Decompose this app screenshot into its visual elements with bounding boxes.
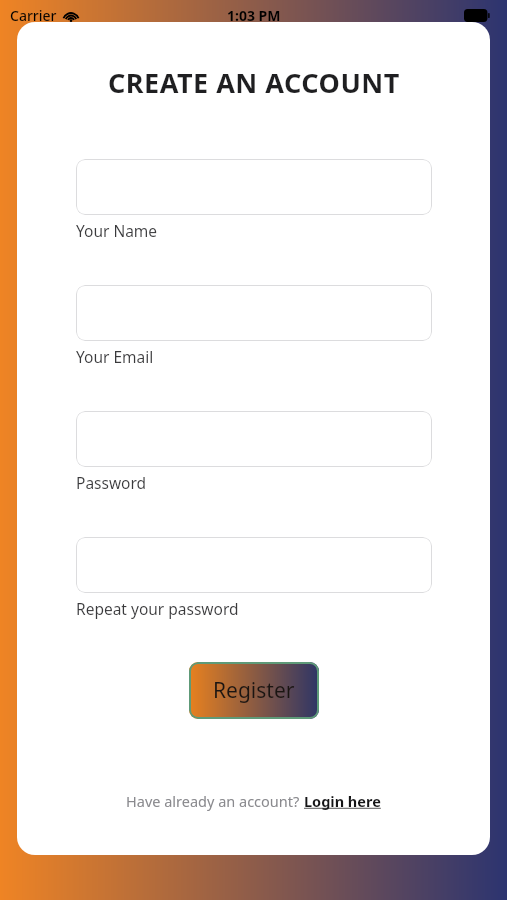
button[interactable] xyxy=(76,159,432,215)
button[interactable]: Register xyxy=(189,662,319,719)
staticText: Carrier xyxy=(10,6,57,25)
staticText: Repeat your password xyxy=(76,598,239,619)
staticText: Password xyxy=(76,472,147,493)
button[interactable] xyxy=(76,285,432,341)
staticText: Register xyxy=(213,676,295,705)
staticText: 1:03 PM xyxy=(227,6,281,25)
staticText: CREATE AN ACCOUNT xyxy=(108,64,400,101)
staticText: Have already an account? xyxy=(126,791,304,811)
button[interactable] xyxy=(76,537,432,593)
staticText: Login here xyxy=(304,791,381,811)
staticText: Your Email xyxy=(76,346,154,367)
button[interactable]: Login here xyxy=(304,791,381,811)
staticText: Your Name xyxy=(76,220,158,241)
button[interactable] xyxy=(76,411,432,467)
